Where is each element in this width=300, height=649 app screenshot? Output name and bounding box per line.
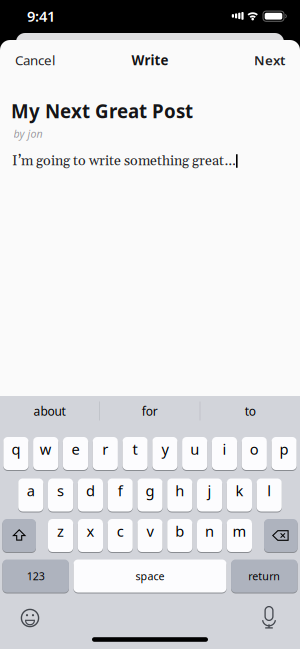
staticText: x	[86, 521, 94, 541]
staticText: h	[175, 481, 184, 500]
staticText: d	[86, 481, 95, 500]
button[interactable]: o	[242, 436, 267, 470]
button[interactable]: 123	[2, 559, 69, 593]
staticText: 9:41	[27, 6, 55, 26]
staticText: o	[250, 439, 259, 459]
staticText: m	[232, 521, 246, 541]
button[interactable]	[2, 518, 36, 552]
staticText: g	[145, 481, 154, 500]
staticText: r	[102, 439, 108, 459]
button[interactable]: Cancel	[15, 51, 55, 69]
staticText: n	[205, 521, 214, 541]
button[interactable]: z	[48, 518, 73, 552]
button[interactable]: u	[182, 436, 207, 470]
button[interactable]: s	[48, 478, 73, 512]
staticText: space	[135, 569, 164, 583]
staticText: for	[142, 403, 158, 419]
button[interactable]: b	[167, 518, 192, 552]
button[interactable]: about	[0, 396, 99, 426]
staticText: 123	[27, 569, 45, 583]
button[interactable]: r	[93, 436, 118, 470]
staticText: j	[208, 481, 212, 500]
button[interactable]: p	[271, 436, 297, 470]
staticText: c	[117, 521, 124, 541]
button[interactable]: a	[18, 478, 43, 512]
staticText: I’m going to write something great…	[12, 152, 235, 170]
staticText: My Next Great Post	[11, 99, 193, 123]
button[interactable]	[259, 605, 279, 629]
button[interactable]: w	[33, 436, 58, 470]
staticText: Cancel	[15, 51, 55, 69]
staticText: z	[57, 521, 64, 541]
button[interactable]: v	[137, 518, 163, 552]
button[interactable]: e	[63, 436, 88, 470]
staticText: f	[118, 481, 123, 500]
button[interactable]: j	[197, 478, 222, 512]
button[interactable]: l	[257, 478, 282, 512]
staticText: i	[222, 439, 226, 459]
button[interactable]: x	[78, 518, 103, 552]
staticText: by jon	[13, 126, 42, 141]
button[interactable]: f	[108, 478, 133, 512]
button[interactable]: space	[73, 559, 226, 593]
button[interactable]: to	[200, 396, 300, 426]
staticText: l	[267, 481, 271, 500]
staticText: y	[161, 439, 168, 459]
staticText: q	[11, 439, 20, 459]
staticText: v	[146, 521, 153, 541]
staticText: t	[133, 439, 138, 459]
staticText: about	[34, 403, 66, 419]
button[interactable]: q	[3, 436, 28, 470]
button[interactable]: m	[227, 518, 252, 552]
staticText: u	[190, 439, 199, 459]
button[interactable]: for	[100, 396, 200, 426]
staticText: a	[27, 481, 35, 500]
staticText: s	[57, 481, 64, 500]
button[interactable]: y	[152, 436, 177, 470]
staticText: Write	[131, 51, 168, 69]
staticText: return	[248, 569, 280, 583]
button[interactable]	[21, 609, 39, 627]
button[interactable]: h	[167, 478, 192, 512]
staticText: b	[175, 521, 184, 541]
button[interactable]: n	[197, 518, 222, 552]
button[interactable]: k	[227, 478, 252, 512]
staticText: w	[40, 439, 52, 459]
button[interactable]: t	[122, 436, 148, 470]
staticText: k	[235, 481, 243, 500]
button[interactable]: d	[78, 478, 103, 512]
button[interactable]: Next	[254, 51, 285, 69]
button[interactable]: return	[231, 559, 298, 593]
button[interactable]: g	[137, 478, 163, 512]
staticText: Next	[254, 51, 285, 69]
button[interactable]	[264, 518, 298, 552]
staticText: e	[71, 439, 79, 459]
staticText: to	[245, 403, 256, 419]
staticText: p	[280, 439, 289, 459]
button[interactable]: i	[212, 436, 237, 470]
button[interactable]: c	[108, 518, 133, 552]
